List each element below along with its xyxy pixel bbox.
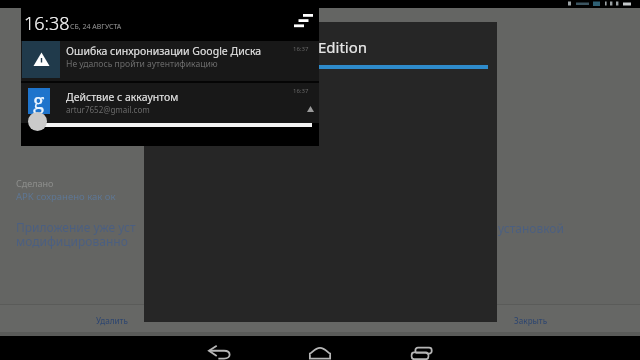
staticText: Приложение уже уст	[16, 219, 136, 235]
staticText: Удалить	[96, 315, 128, 326]
staticText: модифицированно	[16, 233, 128, 249]
staticText: Закрыть	[514, 315, 548, 326]
staticText: Действие с аккаунтом	[66, 90, 179, 104]
button[interactable]: Clear all notifications	[289, 10, 317, 34]
staticText: APK сохранено как ок	[16, 190, 116, 203]
button[interactable]: Ошибка синхронизации Google Диска	[21, 41, 319, 81]
button[interactable]: Home	[304, 340, 336, 360]
staticText: 16:37	[293, 87, 309, 95]
staticText: artur7652@gmail.com	[66, 104, 150, 115]
button[interactable]: Back	[203, 340, 235, 360]
button[interactable]: Recent apps	[406, 340, 438, 360]
button[interactable]: g	[21, 83, 319, 123]
button[interactable]: Close notification shade	[28, 112, 47, 131]
staticText: 16:38	[24, 11, 70, 36]
button[interactable]: Закрыть	[500, 307, 632, 333]
staticText: Сделано	[16, 177, 54, 189]
staticText: установкой	[498, 220, 564, 236]
staticText: 16:37	[293, 45, 309, 53]
staticText: СБ, 24 АВГУСТА	[70, 22, 122, 32]
staticText: Ошибка синхронизации Google Диска	[66, 44, 262, 58]
staticText: Не удалось пройти аутентификацию	[66, 58, 218, 70]
staticText: Edition	[318, 37, 368, 57]
button[interactable]: Удалить	[8, 307, 143, 333]
staticText: g	[33, 87, 45, 113]
